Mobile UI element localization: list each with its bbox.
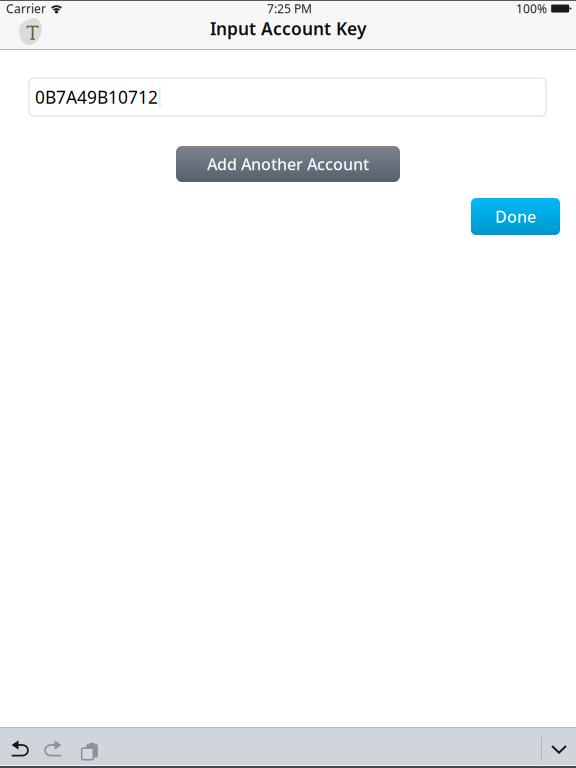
button[interactable]: Done: [471, 198, 560, 235]
button[interactable]: Undo: [3, 728, 36, 765]
button[interactable]: Add Another Account: [176, 146, 400, 182]
staticText: Input Account Key: [210, 17, 366, 40]
button[interactable]: Paste: [71, 728, 104, 765]
staticText: Done: [495, 206, 536, 227]
staticText: 7:25 PM: [267, 0, 312, 16]
button[interactable]: Redo: [36, 728, 71, 765]
staticText: 0B7A49B10712: [35, 85, 158, 108]
staticText: Add Another Account: [207, 153, 369, 175]
staticText: 100%: [516, 0, 547, 16]
button[interactable]: Hide keyboard: [542, 728, 576, 765]
staticText: Carrier: [6, 0, 46, 16]
